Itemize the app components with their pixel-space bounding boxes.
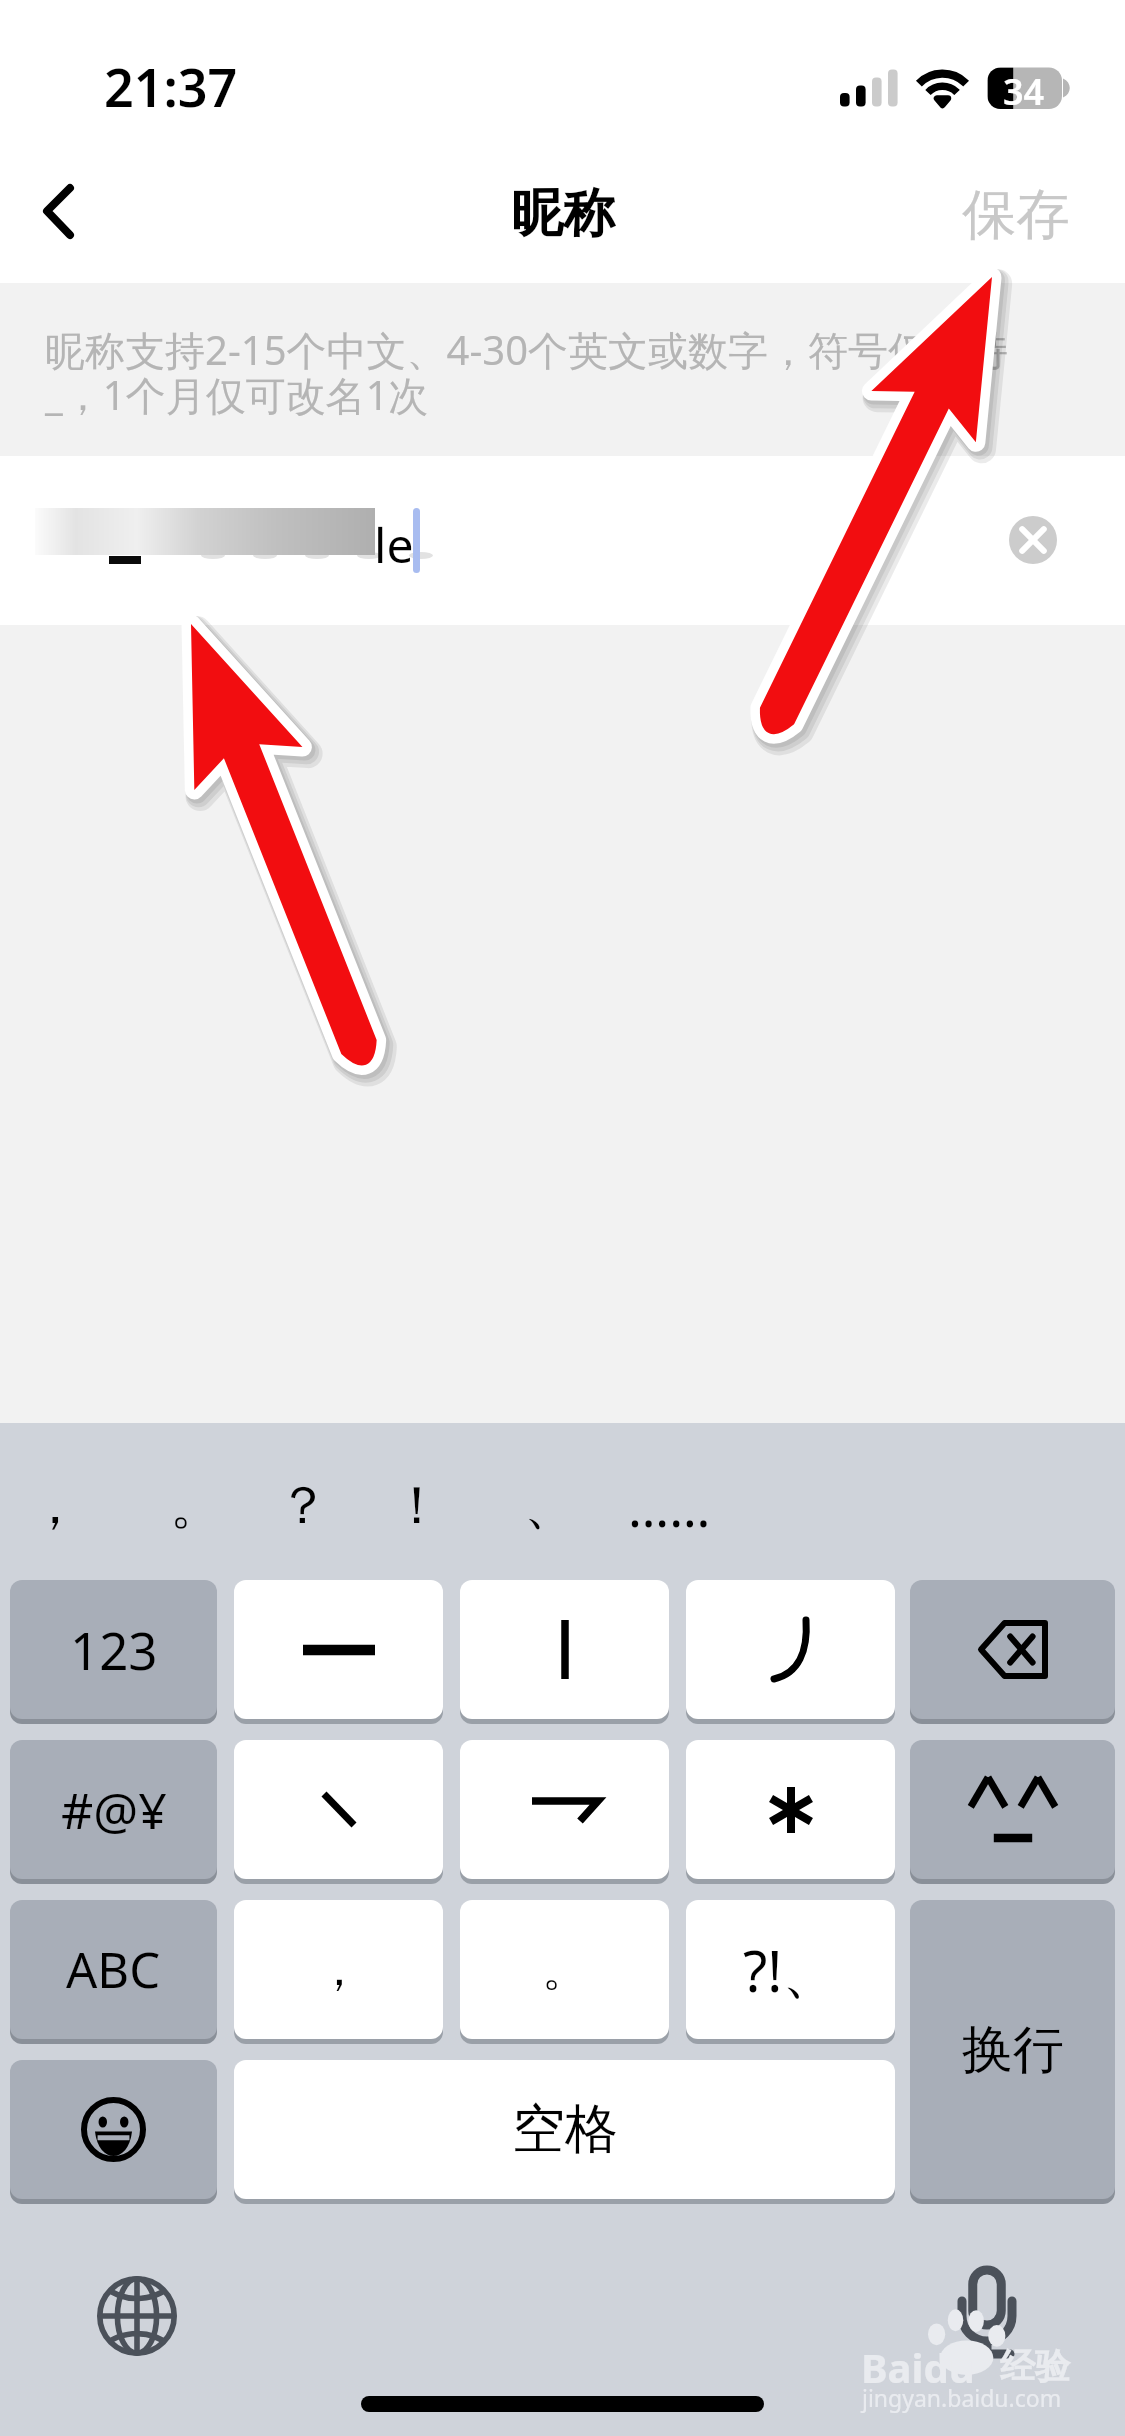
- staticText: 经验: [1000, 2344, 1070, 2388]
- button[interactable]: Emoji: [10, 2060, 217, 2199]
- button[interactable]: 换行: [910, 1900, 1115, 2199]
- staticText: 保存: [962, 181, 1070, 249]
- staticText: ！: [391, 1473, 443, 1539]
- button[interactable]: 保存: [938, 160, 1094, 270]
- staticText: 21:37: [104, 51, 238, 122]
- button[interactable]: Switch keyboard: [97, 2276, 177, 2356]
- button[interactable]: Back: [8, 152, 126, 270]
- button[interactable]: Clear text: [1009, 516, 1057, 564]
- button[interactable]: Backspace: [910, 1580, 1115, 1719]
- staticText: 昵称: [511, 181, 615, 247]
- staticText: 换行: [962, 2018, 1064, 2082]
- button[interactable]: 、: [507, 1463, 593, 1549]
- button[interactable]: Kaomoji: [910, 1740, 1115, 1879]
- button[interactable]: ！: [374, 1463, 460, 1549]
- staticText: 。: [542, 1941, 588, 1999]
- staticText: #@¥: [61, 1776, 167, 1844]
- button[interactable]: ABC: [10, 1900, 217, 2039]
- button[interactable]: [686, 1580, 895, 1719]
- button[interactable]: #@¥: [10, 1740, 217, 1879]
- button[interactable]: ……: [604, 1463, 734, 1549]
- button[interactable]: ，: [234, 1900, 443, 2039]
- staticText: 。: [170, 1473, 222, 1539]
- staticText: jingyan.baidu.com: [862, 2382, 1062, 2413]
- button[interactable]: 123: [10, 1580, 217, 1719]
- staticText: ，: [316, 1941, 362, 1999]
- button[interactable]: [0, 456, 1125, 625]
- button[interactable]: [686, 1740, 895, 1879]
- button[interactable]: [234, 1580, 443, 1719]
- staticText: Baidu: [861, 2340, 975, 2394]
- other: Kaomoji: [965, 1771, 1061, 1849]
- button[interactable]: [460, 1740, 669, 1879]
- button[interactable]: [234, 1740, 443, 1879]
- staticText: 、: [524, 1473, 576, 1539]
- button[interactable]: 。: [460, 1900, 669, 2039]
- staticText: 空格: [512, 2096, 618, 2163]
- staticText: ……: [628, 1471, 711, 1542]
- other: Backspace: [978, 1620, 1048, 1679]
- staticText: 123: [70, 1615, 158, 1684]
- button[interactable]: [460, 1580, 669, 1719]
- staticText: ？: [277, 1473, 329, 1539]
- other: Emoji: [81, 2097, 146, 2162]
- staticText: _，1个月仅可改名1次: [45, 367, 429, 422]
- button[interactable]: ？: [260, 1463, 346, 1549]
- button[interactable]: 。: [153, 1463, 239, 1549]
- staticText: le: [374, 512, 414, 577]
- button[interactable]: ?!、: [686, 1900, 895, 2039]
- staticText: ABC: [66, 1936, 161, 2003]
- button[interactable]: ，: [12, 1463, 98, 1549]
- button[interactable]: 空格: [234, 2060, 895, 2199]
- staticText: ，: [29, 1473, 81, 1539]
- staticText: ?!、: [743, 1932, 839, 2008]
- staticText: 昵称支持2-15个中文、4-30个英文或数字，符号仅支持: [45, 322, 1009, 377]
- staticText: 34: [1003, 67, 1045, 109]
- button[interactable]: Voice input: [947, 2270, 1027, 2370]
